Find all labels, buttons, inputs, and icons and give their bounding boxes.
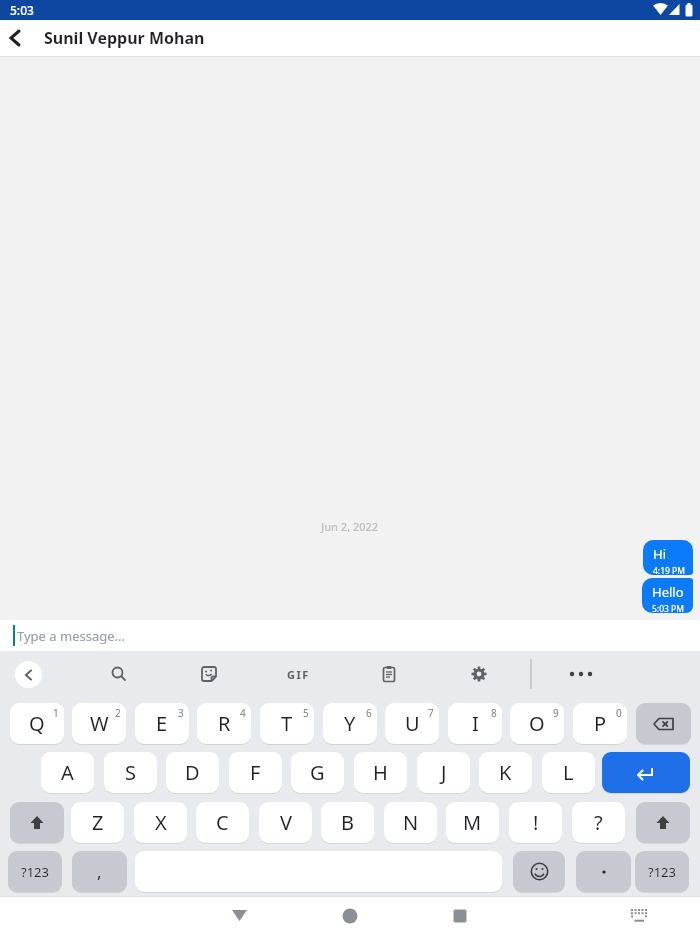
button[interactable]	[1, 24, 29, 52]
button[interactable]: E	[135, 703, 189, 744]
button[interactable]: A	[41, 752, 94, 793]
button[interactable]	[602, 752, 690, 793]
button[interactable]: I	[448, 703, 502, 744]
button[interactable]: M	[446, 802, 499, 843]
staticText: P	[594, 710, 607, 737]
staticText: 5	[303, 706, 309, 720]
button[interactable]	[187, 652, 231, 696]
button[interactable]	[636, 703, 691, 744]
button[interactable]: O	[510, 703, 564, 744]
staticText: O	[529, 710, 545, 737]
button[interactable]	[619, 897, 659, 934]
button[interactable]	[457, 652, 501, 696]
staticText: Jun 2, 2022	[321, 519, 379, 534]
staticText: A	[61, 759, 74, 786]
button[interactable]: V	[259, 802, 312, 843]
button[interactable]	[559, 652, 603, 696]
button[interactable]	[330, 897, 370, 934]
staticText: J	[441, 759, 447, 786]
staticText: M	[463, 809, 482, 836]
button[interactable]: X	[134, 802, 187, 843]
staticText: ,	[97, 860, 102, 883]
staticText: Sunil Veppur Mohan	[44, 27, 205, 49]
button[interactable]: T	[260, 703, 314, 744]
button[interactable]	[367, 652, 411, 696]
staticText: 8	[491, 706, 497, 720]
staticText: V	[280, 809, 292, 836]
staticText: X	[155, 809, 167, 836]
button[interactable]: Hello	[642, 578, 693, 613]
button[interactable]: ?123	[635, 851, 689, 892]
staticText: D	[185, 759, 200, 786]
button[interactable]: H	[354, 752, 407, 793]
staticText: 5:03 PM	[652, 603, 684, 613]
staticText: 2	[115, 706, 121, 720]
staticText: 9	[553, 706, 559, 720]
button[interactable]: Z	[71, 802, 124, 843]
button[interactable]	[97, 652, 141, 696]
staticText: Y	[344, 710, 356, 737]
button[interactable]: GIF	[276, 652, 320, 696]
button[interactable]: ?123	[8, 851, 62, 892]
staticText: 4	[240, 706, 246, 720]
button[interactable]: C	[196, 802, 249, 843]
staticText: Hi	[653, 545, 666, 563]
staticText: Hello	[652, 583, 684, 601]
staticText: 4:19 PM	[653, 565, 685, 575]
button[interactable]: P	[573, 703, 627, 744]
button[interactable]: K	[479, 752, 532, 793]
staticText: !	[533, 809, 539, 836]
staticText: 7	[428, 706, 434, 720]
staticText: L	[563, 759, 574, 786]
staticText: ?123	[21, 863, 49, 881]
button[interactable]: !	[509, 802, 562, 843]
button[interactable]: B	[321, 802, 374, 843]
button[interactable]: W	[72, 703, 126, 744]
staticText: H	[373, 759, 388, 786]
button[interactable]	[219, 897, 259, 934]
button[interactable]	[576, 851, 631, 892]
button[interactable]: U	[385, 703, 439, 744]
staticText: I	[472, 710, 479, 737]
button[interactable]: J	[417, 752, 470, 793]
button[interactable]: L	[542, 752, 595, 793]
button[interactable]	[10, 802, 64, 843]
button[interactable]	[440, 897, 480, 934]
button[interactable]: Y	[323, 703, 377, 744]
staticText: G	[310, 759, 325, 786]
staticText: 6	[366, 706, 372, 720]
staticText: K	[499, 759, 512, 786]
staticText: ?	[594, 809, 603, 836]
button[interactable]: R	[197, 703, 251, 744]
staticText: C	[216, 809, 229, 836]
staticText: U	[405, 710, 420, 737]
button[interactable]	[15, 661, 42, 688]
staticText: 1	[53, 706, 59, 720]
staticText: GIF	[287, 667, 310, 682]
button[interactable]: Q	[10, 703, 64, 744]
staticText: 3	[178, 706, 184, 720]
staticText: F	[250, 759, 261, 786]
button[interactable]: S	[104, 752, 157, 793]
button[interactable]: ?	[572, 802, 625, 843]
button[interactable]: Type a message...	[0, 620, 700, 651]
button[interactable]: F	[229, 752, 282, 793]
button[interactable]	[636, 802, 690, 843]
staticText: E	[156, 710, 168, 737]
staticText: N	[403, 809, 419, 836]
staticText: ?123	[648, 863, 676, 881]
staticText: W	[90, 710, 109, 737]
staticText: T	[281, 710, 293, 737]
staticText: B	[341, 809, 354, 836]
button[interactable]	[513, 851, 565, 892]
staticText: S	[125, 759, 136, 786]
staticText: 5:03	[10, 2, 34, 18]
button[interactable]: D	[166, 752, 219, 793]
button[interactable]: N	[384, 802, 437, 843]
staticText: Q	[29, 710, 45, 737]
button[interactable]: Hi	[643, 540, 693, 575]
button[interactable]: G	[291, 752, 344, 793]
staticText: 0	[616, 706, 622, 720]
button[interactable]: ,	[72, 851, 127, 892]
